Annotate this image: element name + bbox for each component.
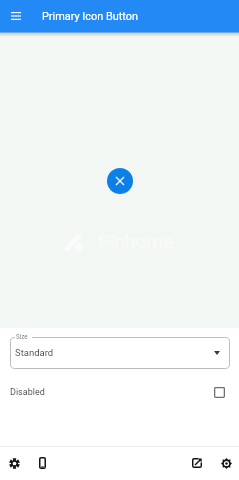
staticText: Primary Icon Button (42, 10, 138, 23)
button[interactable]: Settings (215, 452, 237, 474)
staticText: Standard (15, 347, 54, 358)
button[interactable]: Disabled (0, 380, 239, 404)
button[interactable]: Close (107, 168, 133, 194)
button[interactable]: Standard (10, 337, 230, 369)
staticText: Size (16, 333, 28, 340)
button[interactable]: Device size (31, 452, 53, 474)
button[interactable]: Navigation menu (6, 6, 26, 26)
button[interactable]: Open in new window (186, 452, 208, 474)
button[interactable]: Theme (3, 452, 25, 474)
staticText: Disabled (10, 387, 45, 398)
